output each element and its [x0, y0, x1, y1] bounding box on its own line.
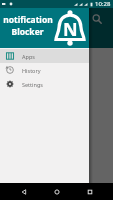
- staticText: notification: [3, 14, 53, 26]
- staticText: Apps: [22, 53, 35, 60]
- button[interactable]: Back: [17, 185, 30, 198]
- staticText: N: [63, 17, 78, 42]
- staticText: Settings: [22, 81, 43, 88]
- staticText: Blocker: [11, 26, 44, 38]
- staticText: History: [22, 67, 41, 74]
- button[interactable]: Apps: [0, 49, 89, 63]
- staticText: 10:28: [95, 0, 111, 8]
- button[interactable]: Home: [50, 185, 63, 198]
- button[interactable]: Settings: [0, 77, 89, 91]
- button[interactable]: Recents: [83, 185, 96, 198]
- button[interactable]: Search: [88, 10, 106, 28]
- button[interactable]: History: [0, 63, 89, 77]
